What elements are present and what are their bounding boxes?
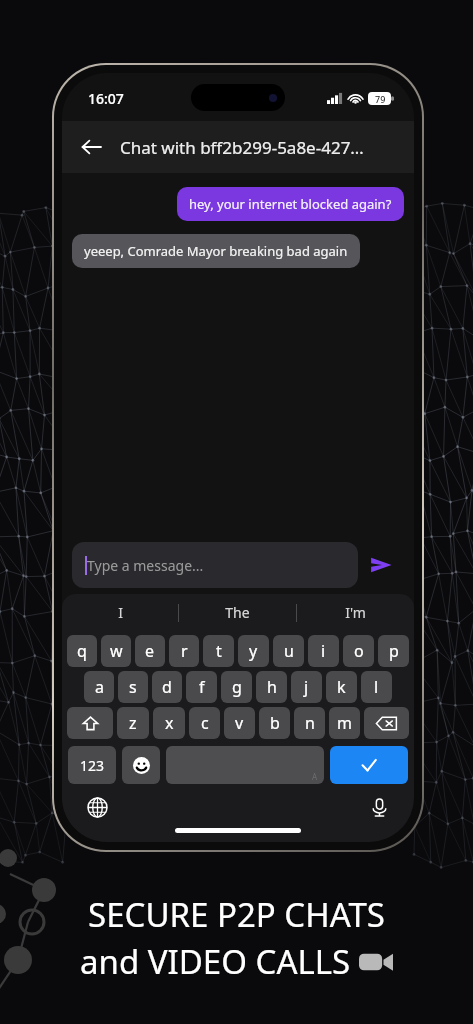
button[interactable]: I'm <box>297 594 414 631</box>
button[interactable]: s <box>118 671 148 703</box>
button[interactable]: t <box>203 635 234 667</box>
button[interactable]: a <box>84 671 114 703</box>
button[interactable]: q <box>67 635 97 667</box>
button[interactable]: c <box>189 707 220 739</box>
staticText: k <box>337 676 346 698</box>
button[interactable]: l <box>361 671 392 703</box>
button[interactable]: d <box>152 671 182 703</box>
staticText: u <box>284 640 294 662</box>
button[interactable]: v <box>224 707 255 739</box>
staticText: n <box>305 712 315 734</box>
staticText: I'm <box>345 603 366 622</box>
staticText: b <box>270 712 280 734</box>
staticText: h <box>267 676 277 698</box>
staticText: SECURE P2P CHATS <box>88 892 385 937</box>
button[interactable]: y <box>238 635 269 667</box>
button[interactable]: 123 <box>68 746 116 784</box>
staticText: I <box>118 603 123 622</box>
button[interactable]: x <box>153 707 185 739</box>
button[interactable]: Key <box>67 707 113 739</box>
button[interactable]: yeeep, Comrade Mayor breaking bad again <box>72 234 360 268</box>
staticText: p <box>389 640 399 662</box>
button[interactable]: f <box>186 671 217 703</box>
staticText: l <box>374 676 379 698</box>
staticText: Type a message... <box>87 556 204 575</box>
staticText: t <box>216 640 222 662</box>
button[interactable]: g <box>221 671 252 703</box>
button[interactable]: Send <box>358 542 404 588</box>
staticText: Chat with bff2b299-5a8e-427… <box>120 136 364 159</box>
button[interactable]: p <box>378 635 409 667</box>
staticText: j <box>304 676 309 698</box>
staticText: s <box>129 676 137 698</box>
button[interactable]: e <box>135 635 165 667</box>
staticText: c <box>201 712 209 734</box>
button[interactable]: Space <box>166 746 324 784</box>
button[interactable]: Voice input <box>362 790 396 824</box>
staticText: 16:07 <box>88 89 124 108</box>
staticText: and VIDEO CALLS <box>80 939 359 984</box>
staticText: yeeep, Comrade Mayor breaking bad again <box>84 242 348 260</box>
button[interactable]: b <box>259 707 290 739</box>
staticText: w <box>110 640 123 662</box>
button[interactable]: u <box>273 635 304 667</box>
staticText: The <box>225 603 250 622</box>
staticText: e <box>145 640 155 662</box>
staticText: d <box>162 676 172 698</box>
staticText: 79 <box>375 93 386 105</box>
button[interactable]: Type a message... <box>72 542 358 588</box>
button[interactable]: o <box>343 635 374 667</box>
button[interactable]: Change language <box>80 790 114 824</box>
button[interactable]: Back <box>70 126 112 168</box>
button[interactable]: k <box>326 671 357 703</box>
staticText: y <box>249 640 258 662</box>
button[interactable]: i <box>308 635 339 667</box>
staticText: a <box>95 676 104 698</box>
button[interactable]: The <box>179 594 296 631</box>
staticText: v <box>235 712 244 734</box>
button[interactable]: w <box>101 635 131 667</box>
button[interactable]: I <box>62 594 178 631</box>
staticText: q <box>77 640 87 662</box>
button[interactable]: Key <box>364 707 409 739</box>
staticText: r <box>181 640 188 662</box>
staticText: m <box>337 712 352 734</box>
staticText: 123 <box>80 756 105 775</box>
staticText: i <box>321 640 326 662</box>
staticText: g <box>232 676 242 698</box>
staticText: hey, your internet blocked again? <box>189 195 392 213</box>
staticText: f <box>199 676 205 698</box>
staticText: x <box>165 712 174 734</box>
staticText: o <box>354 640 364 662</box>
staticText: A <box>312 771 318 782</box>
button[interactable]: m <box>329 707 360 739</box>
button[interactable]: n <box>294 707 325 739</box>
button[interactable]: z <box>117 707 149 739</box>
button[interactable]: hey, your internet blocked again? <box>177 187 404 221</box>
staticText: z <box>129 712 137 734</box>
button[interactable]: r <box>169 635 199 667</box>
button[interactable]: Emoji <box>122 746 160 784</box>
button[interactable]: Enter <box>330 746 408 784</box>
button[interactable]: h <box>256 671 287 703</box>
button[interactable]: j <box>291 671 322 703</box>
